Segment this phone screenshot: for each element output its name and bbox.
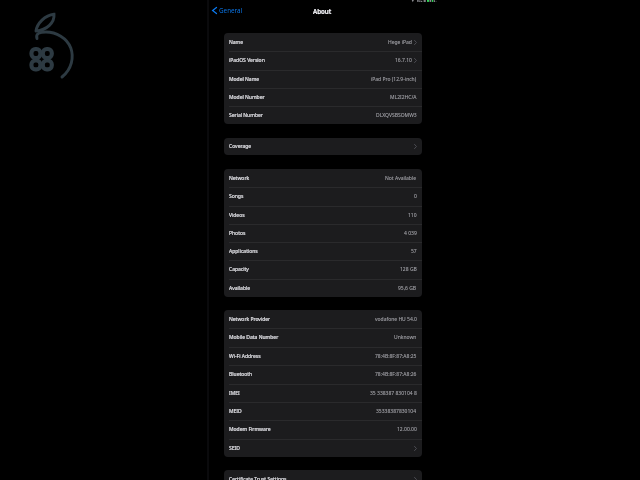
staticText: 78:4B:8F:87:A8:25 — [375, 353, 417, 360]
button[interactable]: Mobile Data Number — [224, 328, 422, 346]
staticText: 16.7.10 — [395, 57, 412, 64]
staticText: 0 — [414, 193, 417, 200]
staticText: 35 338387 830104 8 — [370, 390, 417, 397]
button[interactable]: Songs — [224, 187, 422, 205]
staticText: Model Number — [229, 94, 265, 101]
button[interactable]: Available — [224, 279, 422, 297]
button[interactable]: IMEI — [224, 384, 422, 402]
staticText: MEID — [229, 408, 242, 415]
staticText: Capacity — [229, 266, 249, 273]
staticText: Songs — [229, 193, 244, 200]
staticText: IMEI — [229, 390, 240, 397]
button[interactable]: Modem Firmware — [224, 420, 422, 438]
staticText: Hege iPad — [388, 39, 412, 46]
button[interactable]: Photos — [224, 224, 422, 242]
staticText: 35338387830104 — [376, 408, 417, 415]
button[interactable]: Coverage — [224, 138, 422, 155]
staticText: DLXQVSBSOMW3 — [376, 112, 417, 119]
button[interactable]: Bluetooth — [224, 365, 422, 383]
button[interactable]: Network — [224, 169, 422, 187]
staticText: Bluetooth — [229, 371, 253, 378]
staticText: Coverage — [229, 143, 252, 150]
staticText: Available — [229, 285, 251, 292]
staticText: Network — [229, 175, 250, 182]
staticText: General — [219, 6, 243, 15]
staticText: Wi-Fi Address — [229, 353, 261, 360]
button[interactable]: Applications — [224, 242, 422, 260]
button[interactable]: Videos — [224, 206, 422, 224]
staticText: Model Name — [229, 76, 260, 83]
staticText: SEID — [229, 445, 240, 452]
staticText: Applications — [229, 248, 258, 255]
staticText: 128 GB — [400, 266, 417, 273]
staticText: Videos — [229, 212, 245, 219]
staticText: About — [313, 7, 332, 15]
button[interactable]: iPadOS Version — [224, 51, 422, 69]
staticText: Name — [229, 39, 244, 46]
staticText: 95,6 GB — [398, 285, 417, 292]
staticText: 110 — [408, 212, 417, 219]
staticText: vodafone HU 54.0 — [375, 316, 417, 323]
staticText: iPad Pro (12.9-inch) — [371, 76, 417, 83]
button[interactable]: SEID — [224, 439, 422, 457]
staticText: iPadOS Version — [229, 57, 265, 64]
staticText: 78:4B:8F:87:A8:26 — [375, 371, 417, 378]
button[interactable]: Model Number — [224, 88, 422, 106]
button[interactable]: Model Name — [224, 70, 422, 88]
staticText: 4 039 — [404, 230, 417, 237]
staticText: Mobile Data Number — [229, 334, 279, 341]
staticText: Not Available — [385, 175, 417, 182]
button[interactable]: Name — [224, 33, 422, 51]
button[interactable]: Wi-Fi Address — [224, 347, 422, 365]
button[interactable]: General — [210, 5, 245, 16]
staticText: Serial Number — [229, 112, 263, 119]
button[interactable]: Network Provider — [224, 310, 422, 328]
staticText: ML2I2HC/A — [390, 94, 417, 101]
staticText: Certificate Trust Settings — [229, 476, 287, 480]
staticText: Unknown — [394, 334, 417, 341]
other: Apple command logo — [26, 12, 76, 80]
button[interactable]: MEID — [224, 402, 422, 420]
button[interactable]: Certificate Trust Settings — [224, 470, 422, 480]
staticText: Photos — [229, 230, 246, 237]
staticText: Network Provider — [229, 316, 271, 323]
button[interactable]: Serial Number — [224, 106, 422, 124]
staticText: Modem Firmware — [229, 426, 271, 433]
staticText: 12.00.00 — [397, 426, 417, 433]
staticText: 57 — [411, 248, 417, 255]
button[interactable]: Capacity — [224, 260, 422, 278]
